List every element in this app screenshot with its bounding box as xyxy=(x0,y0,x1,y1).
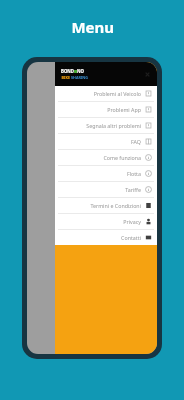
staticText: BOND xyxy=(61,68,74,74)
button[interactable]: Privacy xyxy=(55,214,157,229)
button[interactable]: FAQ xyxy=(55,134,157,149)
staticText: Termini e Condizioni xyxy=(90,202,141,209)
staticText: NO xyxy=(77,68,84,74)
staticText: Problemi al Veicolo xyxy=(93,90,141,97)
staticText: Segnala altri problemi xyxy=(86,122,141,129)
button[interactable]: Contatti xyxy=(55,230,157,245)
staticText: Privacy xyxy=(123,218,141,225)
staticText: Menu xyxy=(71,17,114,37)
staticText: FAQ xyxy=(130,138,141,145)
button[interactable]: Tariffe xyxy=(55,182,157,197)
button[interactable]: Problemi App xyxy=(55,102,157,117)
button[interactable]: Flotta xyxy=(55,166,157,181)
staticText: SHARING xyxy=(71,75,88,80)
button[interactable]: Termini e Condizioni xyxy=(55,198,157,213)
staticText: Problemi App xyxy=(107,106,141,113)
staticText: Come funziona xyxy=(103,154,141,161)
button[interactable]: Problemi al Veicolo xyxy=(55,86,157,101)
staticText: Contatti xyxy=(121,234,141,241)
button[interactable]: Come funziona xyxy=(55,150,157,165)
staticText: Tariffe xyxy=(125,186,141,193)
staticText: Flotta xyxy=(126,170,141,177)
staticText: BIKE xyxy=(61,75,70,80)
button[interactable]: Close menu xyxy=(143,70,152,79)
button[interactable]: Segnala altri problemi xyxy=(55,118,157,133)
